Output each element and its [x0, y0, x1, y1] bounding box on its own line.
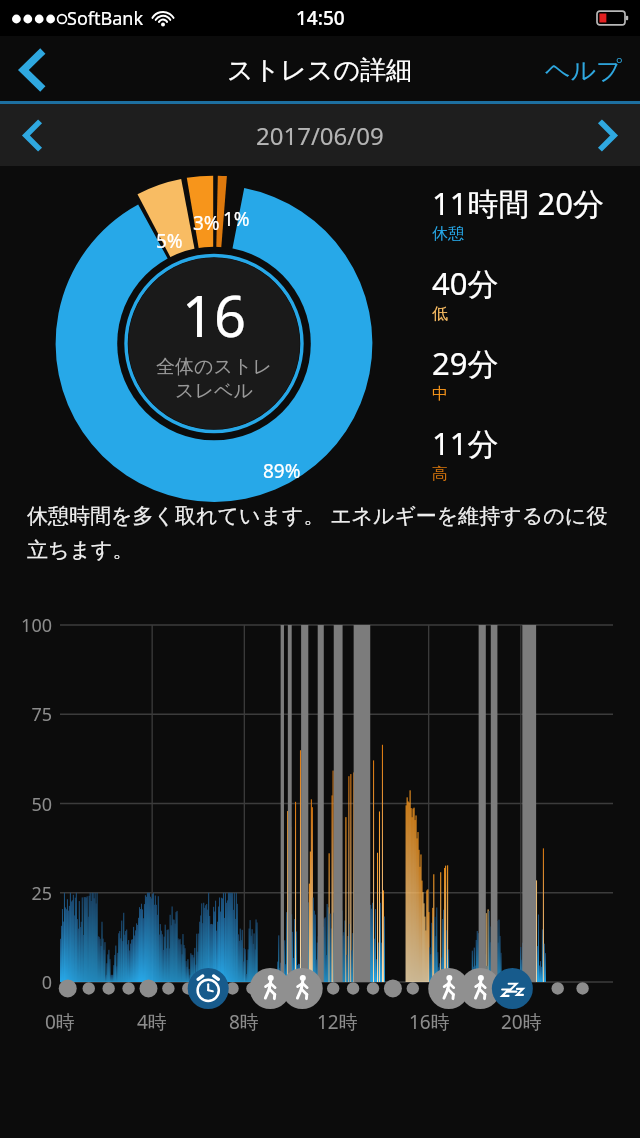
- button[interactable]: Next day: [576, 104, 640, 166]
- button[interactable]: Overall stress level 16: [38, 176, 390, 511]
- staticText: 中: [432, 384, 448, 404]
- staticText: 29分: [432, 342, 499, 384]
- staticText: 0時: [45, 1009, 75, 1035]
- staticText: 40分: [432, 262, 499, 304]
- button[interactable]: Previous day: [0, 104, 64, 166]
- staticText: 4時: [137, 1009, 167, 1035]
- staticText: 0: [41, 970, 52, 995]
- staticText: ストレスの詳細: [227, 54, 413, 87]
- staticText: 16時: [409, 1009, 450, 1035]
- staticText: 休憩: [432, 224, 464, 244]
- staticText: 89%: [263, 458, 301, 484]
- staticText: 2017/06/09: [256, 119, 384, 152]
- staticText: 16: [182, 277, 247, 353]
- staticText: 11時間 20分: [432, 182, 604, 224]
- staticText: 8時: [229, 1009, 259, 1035]
- staticText: 5%: [156, 228, 183, 254]
- staticText: 12時: [317, 1009, 358, 1035]
- staticText: 1%: [223, 206, 250, 232]
- staticText: 11分: [432, 422, 499, 464]
- staticText: 14:50: [296, 5, 345, 31]
- staticText: 休憩時間を多く取れています。 エネルギーを維持するのに役立ちます。: [27, 501, 616, 563]
- staticText: 50: [31, 792, 52, 817]
- staticText: 20時: [501, 1009, 542, 1035]
- staticText: 3%: [193, 210, 220, 236]
- staticText: スレベル: [175, 379, 253, 403]
- button[interactable]: Back: [0, 38, 64, 102]
- staticText: 全体のストレ: [156, 355, 272, 379]
- staticText: 低: [432, 304, 448, 324]
- staticText: ヘルプ: [545, 55, 622, 86]
- staticText: 高: [432, 464, 448, 484]
- staticText: 25: [31, 881, 52, 906]
- button[interactable]: ヘルプ: [539, 45, 628, 96]
- staticText: SoftBank: [67, 6, 143, 31]
- staticText: 100: [21, 613, 52, 638]
- staticText: 75: [31, 702, 52, 727]
